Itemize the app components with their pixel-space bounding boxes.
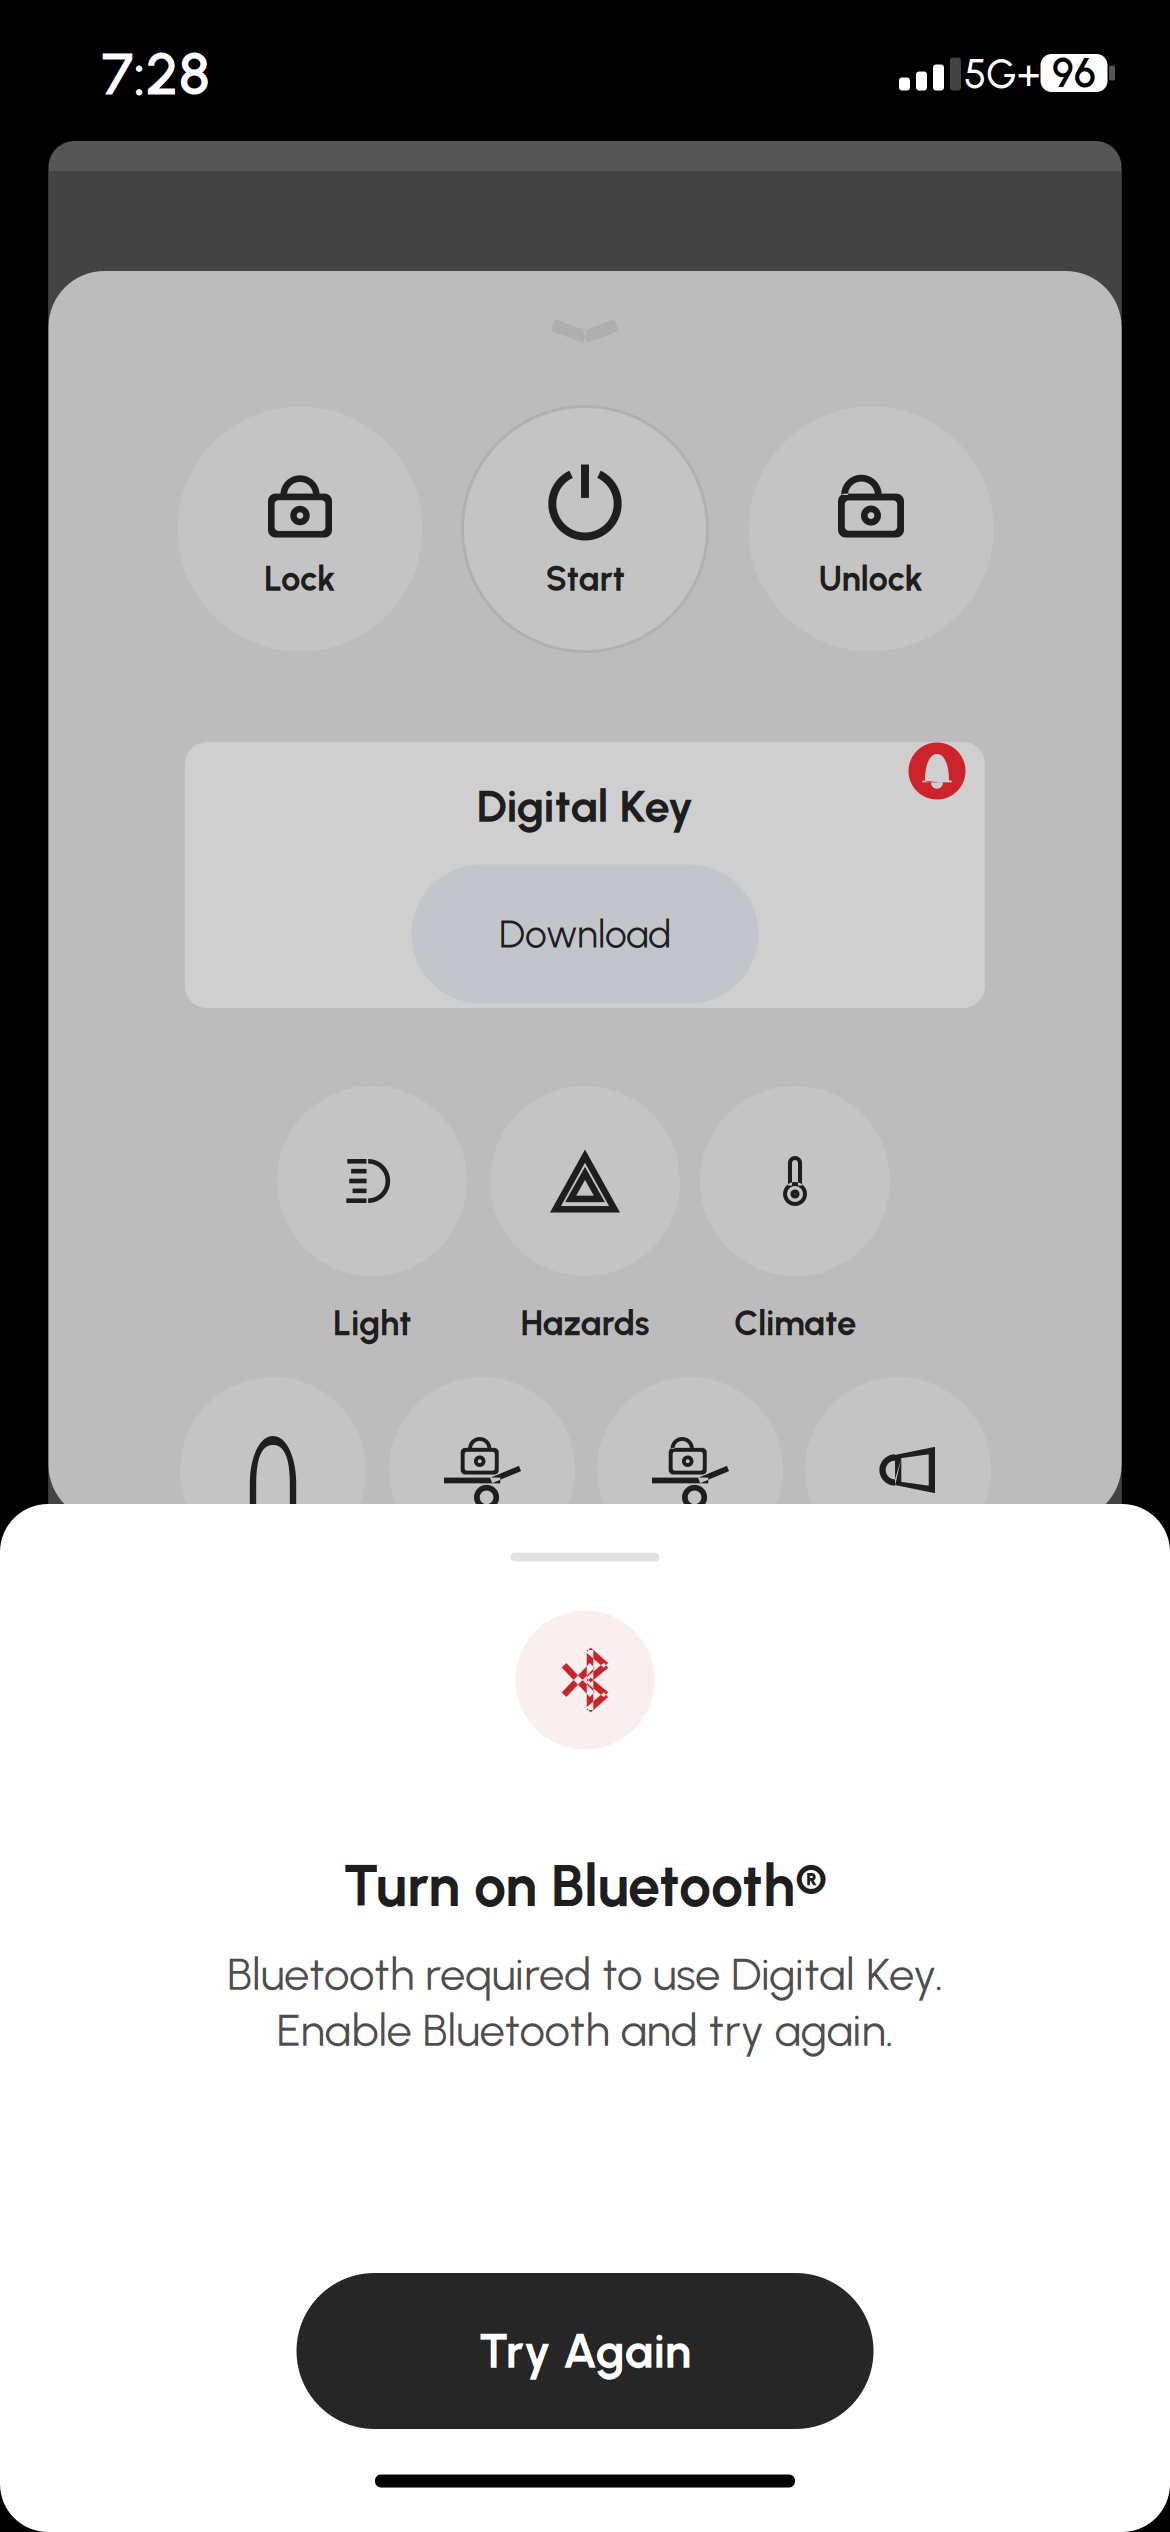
button[interactable]: Start (462, 406, 707, 651)
staticText: Try Again (478, 2322, 691, 2380)
button[interactable]: Light (247, 1086, 497, 1366)
staticText: Turn on Bluetooth® (343, 1852, 827, 1920)
staticText: Unlock (818, 558, 923, 599)
staticText: Hazards (520, 1302, 649, 1344)
staticText: 5G+ (964, 50, 1040, 98)
staticText: Light (333, 1302, 411, 1344)
button[interactable]: Lock trunk (389, 1377, 575, 1563)
button[interactable]: Notifications (908, 742, 965, 799)
button[interactable]: Climate (670, 1086, 920, 1366)
staticText: Climate (734, 1302, 856, 1344)
staticText: Bluetooth required to use Digital Key. (227, 1947, 943, 2001)
staticText: Digital Key (476, 779, 693, 833)
staticText: 7:28 (101, 39, 210, 109)
button[interactable]: Unlock (748, 406, 993, 651)
staticText: Enable Bluetooth and try again. (276, 2003, 893, 2057)
button[interactable]: Try Again (296, 2273, 873, 2429)
button[interactable]: Horn and lights (180, 1377, 366, 1563)
button[interactable]: Horn (805, 1377, 991, 1563)
button[interactable]: Hazards (460, 1086, 710, 1366)
button[interactable]: Download (411, 864, 758, 1003)
button[interactable]: Lock (177, 406, 422, 651)
staticText: Download (499, 911, 671, 957)
staticText: Start (545, 558, 624, 599)
staticText: 96 (1052, 49, 1096, 97)
staticText: Lock (264, 558, 336, 599)
button[interactable]: Unlock trunk (597, 1377, 783, 1563)
